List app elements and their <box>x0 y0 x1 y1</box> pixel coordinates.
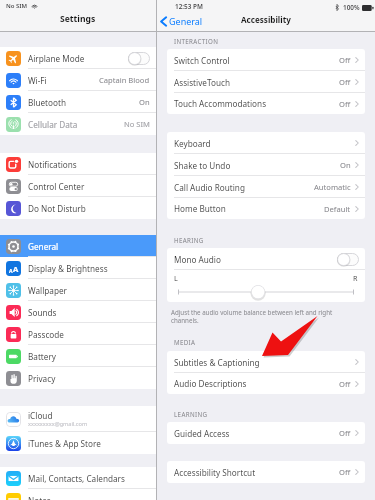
staticText: Airplane Mode <box>28 53 85 64</box>
staticText: INTERACTION <box>174 37 219 45</box>
button[interactable]: Wallpaper <box>0 279 156 301</box>
button[interactable]: Wi-Fi <box>0 69 156 91</box>
staticText: Bluetooth <box>28 97 66 108</box>
staticText: R <box>353 273 358 283</box>
button[interactable]: General <box>0 235 156 257</box>
button[interactable]: Passcode <box>0 323 156 345</box>
button[interactable]: iCloud <box>0 406 156 432</box>
staticText: Wi-Fi <box>28 75 47 86</box>
staticText: Guided Access <box>174 428 230 439</box>
staticText: xxxxxxxxx@gmail.com <box>28 420 88 428</box>
staticText: Adjust the audio volume balance between … <box>171 308 333 324</box>
staticText: Off <box>339 467 351 477</box>
button[interactable]: Do Not Disturb <box>0 197 156 219</box>
button[interactable]: Airplane Mode <box>0 47 156 69</box>
button[interactable]: Cellular Data <box>0 113 156 135</box>
button[interactable]: General <box>160 15 203 27</box>
staticText: Mono Audio <box>174 254 221 265</box>
button[interactable]: Touch Accommodations <box>167 93 365 114</box>
staticText: Do Not Disturb <box>28 203 86 214</box>
staticText: Default <box>324 204 351 214</box>
button[interactable]: iTunes & App Store <box>0 432 156 454</box>
staticText: Cellular Data <box>28 119 78 130</box>
staticText: Accessibility Shortcut <box>174 467 256 478</box>
staticText: Audio Descriptions <box>174 378 247 389</box>
staticText: Battery <box>28 351 57 362</box>
button[interactable]: A <box>0 257 156 279</box>
staticText: Keyboard <box>174 138 211 149</box>
staticText: Passcode <box>28 329 64 340</box>
staticText: Captain Blood <box>99 75 150 85</box>
staticText: HEARING <box>174 236 204 244</box>
staticText: Off <box>339 99 351 109</box>
staticText: Sounds <box>28 307 57 318</box>
staticText: 100% <box>343 3 360 12</box>
staticText: No SIM <box>6 2 28 10</box>
staticText: Off <box>339 55 351 65</box>
staticText: No SIM <box>124 119 150 129</box>
staticText: iTunes & App Store <box>28 438 101 449</box>
staticText: LEARNING <box>174 410 208 418</box>
staticText: L <box>174 273 178 283</box>
staticText: Control Center <box>28 181 85 192</box>
button[interactable]: Privacy <box>0 367 156 389</box>
staticText: Off <box>339 428 351 438</box>
staticText: A <box>9 267 13 274</box>
staticText: Off <box>339 379 351 389</box>
staticText: Subtitles & Captioning <box>174 357 260 368</box>
staticText: Accessibility <box>241 14 291 25</box>
button[interactable]: Accessibility Shortcut <box>167 461 365 483</box>
button[interactable]: L <box>167 270 365 302</box>
button[interactable]: Home Button <box>167 198 365 219</box>
staticText: Shake to Undo <box>174 160 231 171</box>
staticText: Privacy <box>28 373 56 384</box>
button[interactable]: Guided Access <box>167 422 365 444</box>
button[interactable]: Shake to Undo <box>167 154 365 176</box>
button[interactable]: Mail, Contacts, Calendars <box>0 467 156 489</box>
staticText: Touch Accommodations <box>174 98 267 109</box>
staticText: Wallpaper <box>28 285 67 296</box>
staticText: MEDIA <box>174 338 196 346</box>
button[interactable]: Bluetooth <box>0 91 156 113</box>
staticText: 12:53 PM <box>175 2 203 11</box>
button[interactable]: Keyboard <box>167 132 365 154</box>
staticText: On <box>340 160 351 170</box>
staticText: iCloud <box>28 410 53 421</box>
staticText: AssistiveTouch <box>174 77 230 88</box>
button[interactable]: Control Center <box>0 175 156 197</box>
button[interactable]: AssistiveTouch <box>167 71 365 93</box>
button[interactable]: Notes <box>0 489 156 500</box>
button[interactable]: Switch Control <box>167 49 365 71</box>
staticText: Notes <box>28 495 51 500</box>
button[interactable]: Subtitles & Captioning <box>167 351 365 373</box>
staticText: Switch Control <box>174 55 230 66</box>
staticText: Automatic <box>314 182 351 192</box>
staticText: Off <box>339 77 351 87</box>
staticText: A <box>13 264 19 274</box>
staticText: Home Button <box>174 203 226 214</box>
staticText: Settings <box>60 13 96 25</box>
button[interactable]: Notifications <box>0 153 156 175</box>
staticText: Notifications <box>28 159 77 170</box>
staticText: Mail, Contacts, Calendars <box>28 473 125 484</box>
staticText: On <box>139 97 150 107</box>
button[interactable]: Mono Audio <box>167 248 365 270</box>
staticText: General <box>169 15 203 27</box>
button[interactable]: Call Audio Routing <box>167 176 365 198</box>
staticText: Call Audio Routing <box>174 182 245 193</box>
button[interactable]: Battery <box>0 345 156 367</box>
staticText: General <box>28 241 59 252</box>
button[interactable]: Audio Descriptions <box>167 373 365 394</box>
staticText: Display & Brightness <box>28 263 108 274</box>
button[interactable]: Sounds <box>0 301 156 323</box>
